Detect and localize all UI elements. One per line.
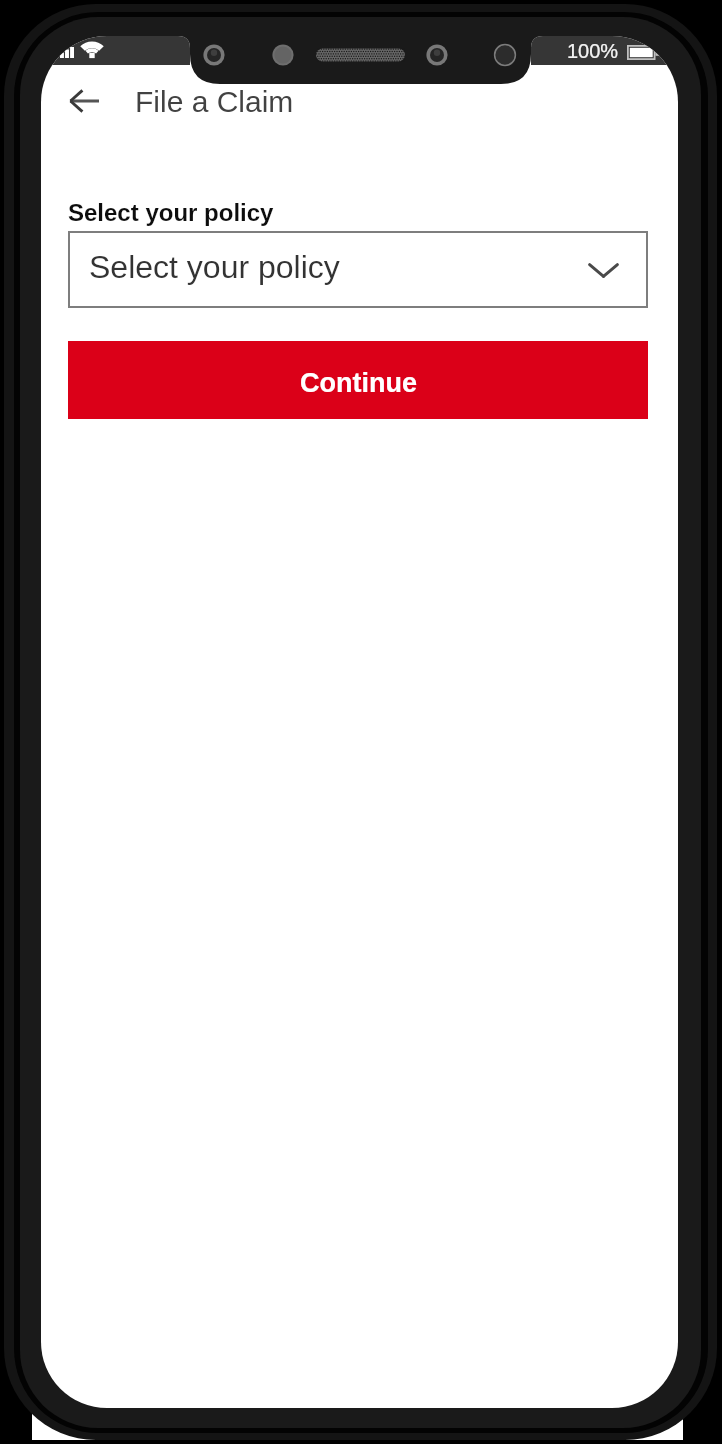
staticText: Select your policy	[68, 199, 274, 226]
staticText: 100%	[567, 40, 619, 62]
staticText: File a Claim	[135, 85, 294, 119]
staticText: Continue	[300, 368, 417, 398]
button[interactable]: Select your policy	[68, 231, 648, 308]
button[interactable]: Continue	[68, 341, 648, 419]
staticText: Select your policy	[89, 249, 340, 285]
button[interactable]: Back	[57, 79, 111, 123]
